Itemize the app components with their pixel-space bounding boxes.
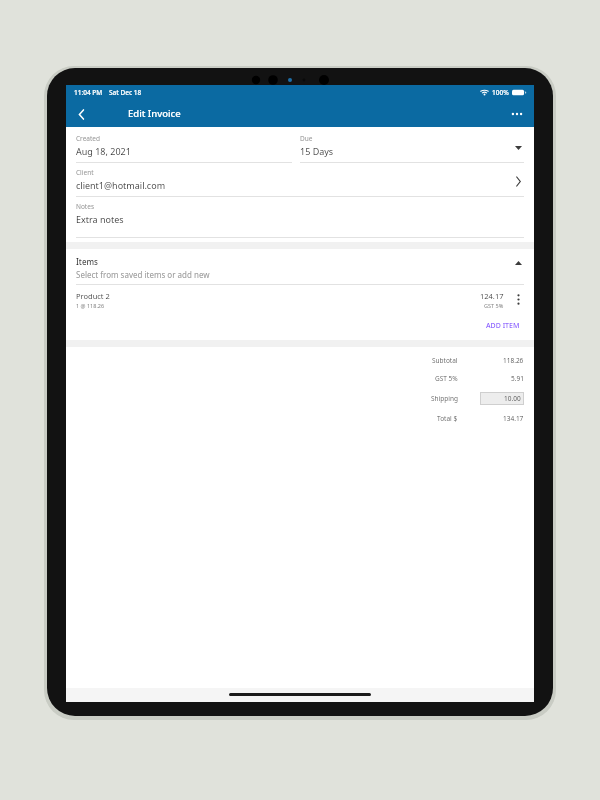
staticText: Extra notes	[76, 213, 124, 225]
staticText: Edit Invoice	[128, 107, 181, 120]
staticText: 124.17	[480, 291, 504, 301]
staticText: Sat Dec 18	[109, 88, 142, 97]
staticText: Subtotal	[432, 356, 458, 365]
button[interactable]: Items	[76, 256, 524, 285]
button[interactable]: Client	[76, 168, 524, 197]
staticText: 11:04 PM	[74, 88, 103, 97]
staticText: client1@hotmail.com	[76, 179, 166, 191]
button[interactable]: Product 2	[76, 291, 524, 309]
staticText: Total $	[437, 414, 458, 423]
staticText: 15 Days	[300, 145, 334, 157]
staticText: 118.26	[503, 356, 524, 365]
button[interactable]: Back	[70, 103, 92, 125]
staticText: 100%	[492, 88, 509, 97]
staticText: 5.91	[511, 374, 524, 383]
staticText: 10.00	[504, 394, 521, 403]
button[interactable]: 10.00	[480, 392, 524, 405]
staticText: Aug 18, 2021	[76, 145, 131, 157]
button[interactable]: More options	[506, 103, 528, 125]
button[interactable]: ADD ITEM	[482, 319, 524, 333]
button[interactable]: Item options	[512, 291, 524, 307]
staticText: Client	[76, 168, 94, 177]
staticText: 1 @ 118.26	[76, 302, 105, 309]
staticText: ADD ITEM	[486, 321, 520, 331]
staticText: Shipping	[431, 394, 458, 403]
staticText: 134.17	[503, 414, 524, 423]
staticText: Notes	[76, 202, 94, 211]
staticText: Due	[300, 134, 313, 143]
staticText: Items	[76, 256, 98, 267]
button[interactable]: Due	[300, 134, 524, 163]
button[interactable]: Notes	[76, 202, 524, 238]
button[interactable]: Created	[76, 134, 300, 163]
staticText: Select from saved items or add new	[76, 269, 210, 280]
staticText: GST 5%	[435, 374, 458, 383]
staticText: Product 2	[76, 291, 110, 301]
staticText: Created	[76, 134, 100, 143]
staticText: GST 5%	[484, 302, 504, 309]
